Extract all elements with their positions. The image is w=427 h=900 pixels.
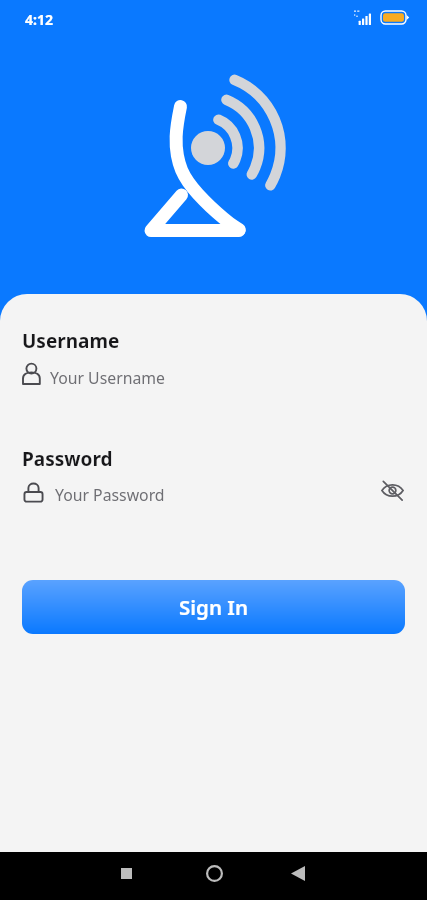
staticText: Your Username xyxy=(50,367,165,389)
staticText: Sign In xyxy=(179,593,248,621)
staticText: Password xyxy=(22,446,113,472)
staticText: 4:12 xyxy=(25,10,53,29)
button[interactable]: Show password xyxy=(374,472,410,508)
button[interactable]: Recent apps xyxy=(94,849,158,897)
staticText: Username xyxy=(22,328,120,354)
button[interactable]: Back xyxy=(266,849,330,897)
button[interactable]: Home xyxy=(182,849,246,897)
button[interactable]: Sign In xyxy=(22,580,405,634)
staticText: Your Password xyxy=(55,484,165,506)
